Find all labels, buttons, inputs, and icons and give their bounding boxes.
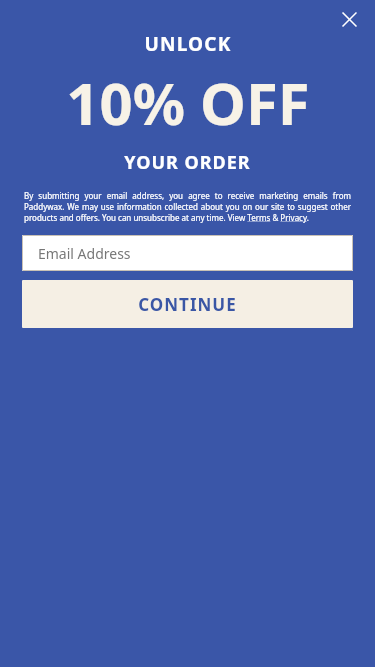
button[interactable]: Email Address [22, 235, 353, 271]
staticText: 10% OFF [66, 63, 310, 142]
staticText: By submitting your email address, you ag… [24, 190, 351, 223]
button[interactable]: CONTINUE [22, 280, 353, 328]
button[interactable]: Close [336, 6, 362, 32]
staticText: Email Address [38, 244, 131, 263]
staticText: UNLOCK [144, 31, 232, 57]
staticText: YOUR ORDER [124, 150, 251, 175]
staticText: CONTINUE [138, 293, 237, 316]
